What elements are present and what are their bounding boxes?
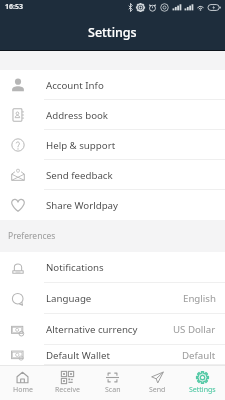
button[interactable]: Receive [45,366,90,400]
staticText: Settings [88,24,137,41]
staticText: Scan [105,385,121,395]
staticText: English [183,292,216,305]
staticText: Share Worldpay [46,199,118,212]
button[interactable]: Scan [90,366,135,400]
staticText: Send [149,385,166,395]
staticText: Account Info [46,79,104,92]
staticText: Preferences [8,230,56,242]
button[interactable]: Settings [180,366,225,400]
staticText: Default [182,349,216,362]
button[interactable]: Share Worldpay [0,190,225,220]
button[interactable]: Default Wallet [0,345,225,365]
button[interactable]: Home [0,366,45,400]
button[interactable]: Language [0,283,225,314]
button[interactable]: Account Info [0,70,225,100]
button[interactable]: Send feedback [0,160,225,190]
staticText: Home [13,385,33,395]
staticText: Receive [55,385,80,395]
staticText: Send feedback [46,169,113,182]
button[interactable]: Send [135,366,180,400]
staticText: Address book [46,109,109,122]
staticText: 16:53 [5,2,23,12]
staticText: Default Wallet [46,349,111,362]
staticText: Alternative currency [46,323,138,336]
staticText: Help & support [46,139,116,152]
button[interactable]: Help & support [0,130,225,160]
button[interactable]: Alternative currency [0,314,225,345]
button[interactable]: Notifications [0,252,225,283]
staticText: Language [46,292,92,305]
staticText: US Dollar [173,323,216,336]
staticText: Settings [189,385,216,395]
button[interactable]: Address book [0,100,225,130]
staticText: Notifications [46,261,104,274]
